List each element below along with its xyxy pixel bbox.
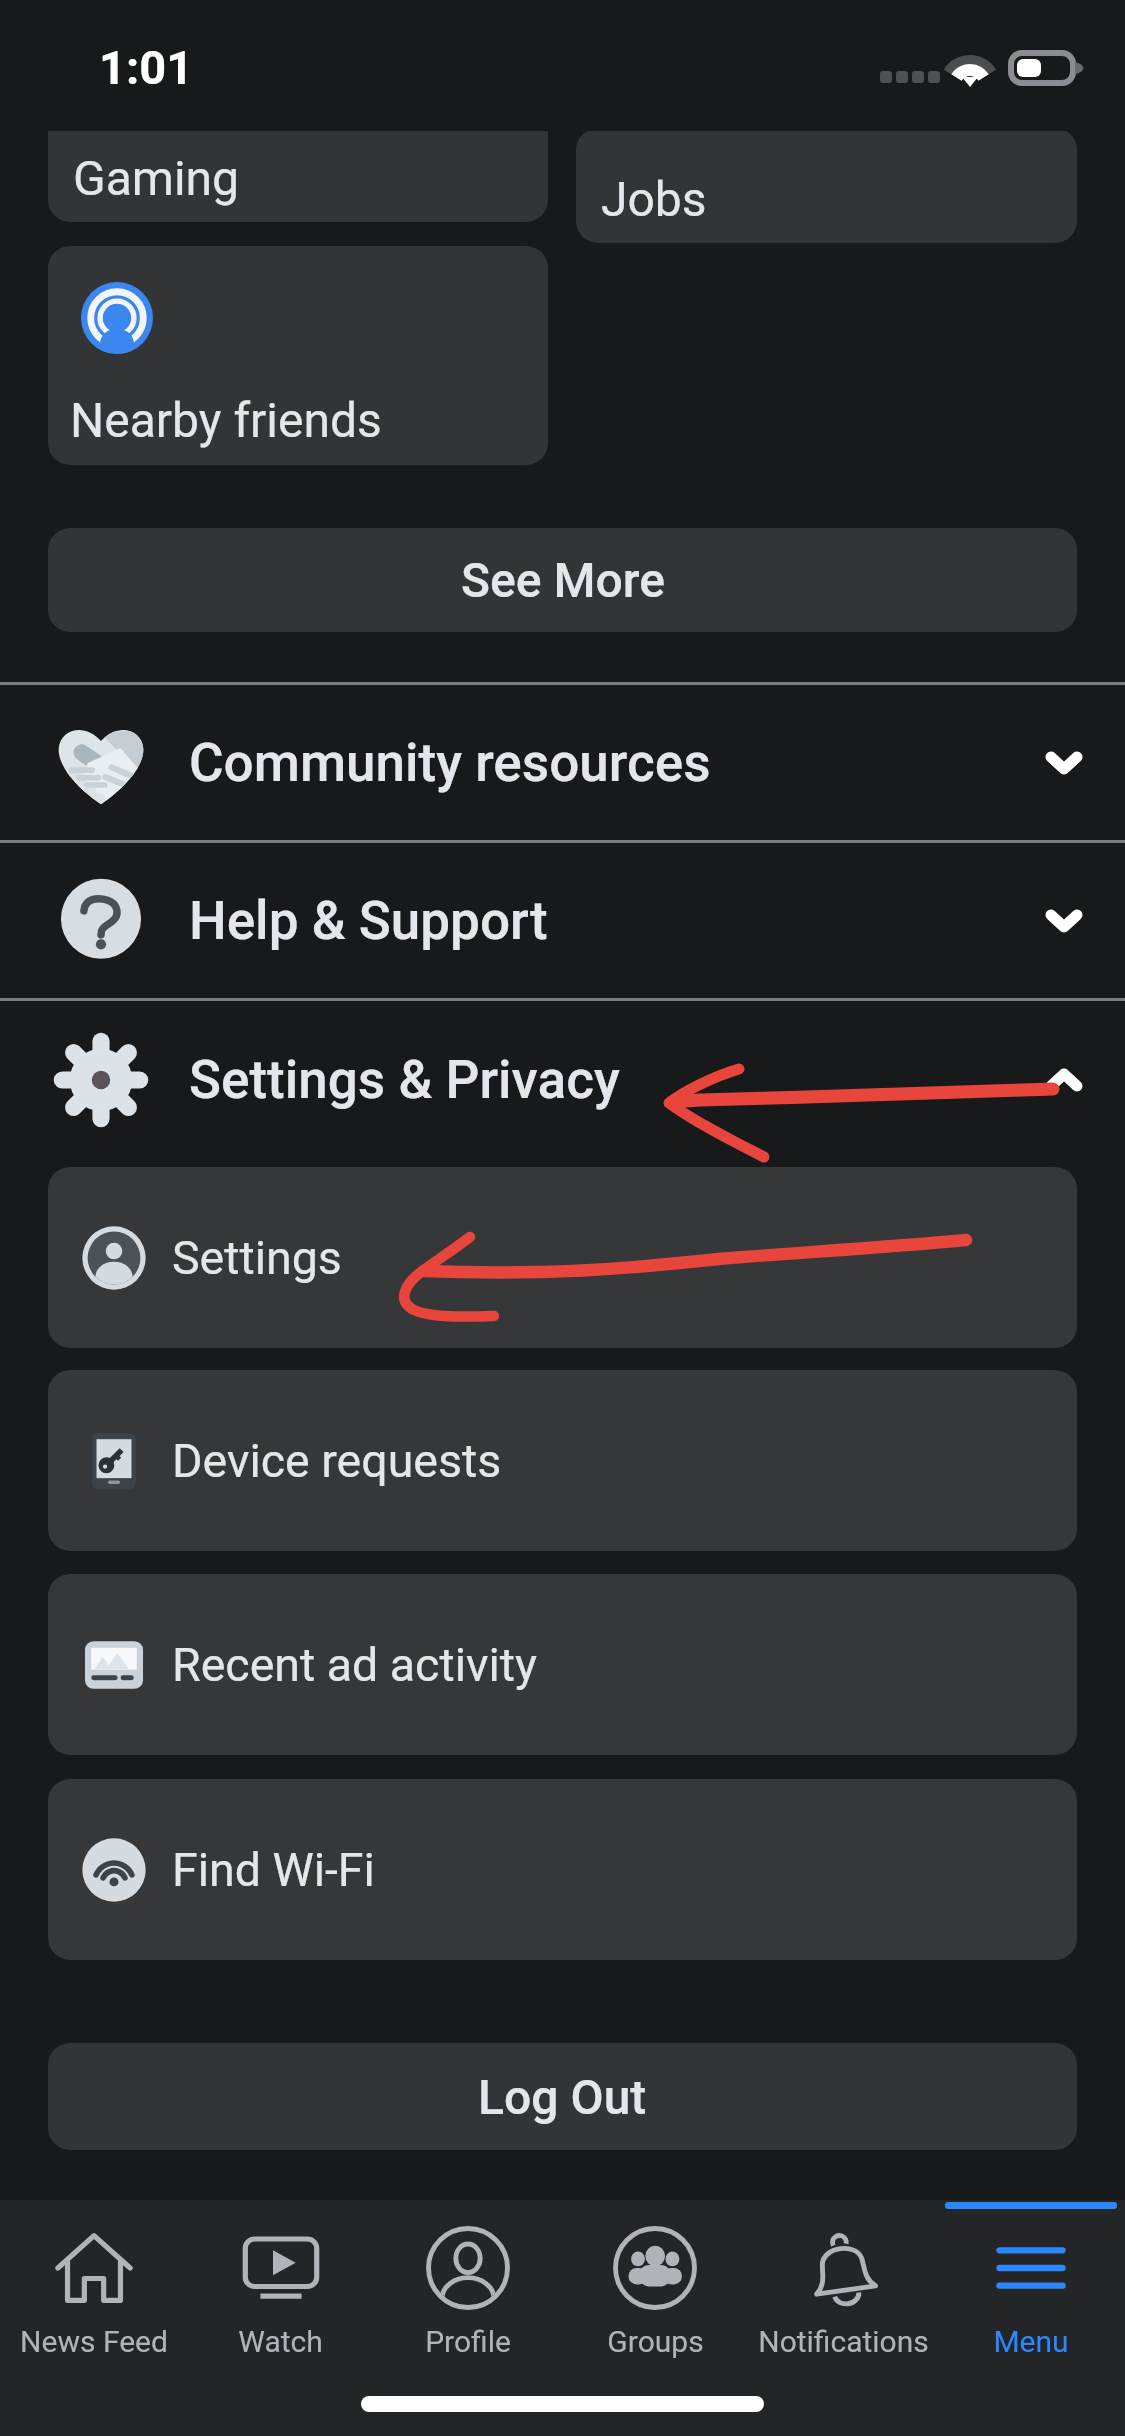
other: Expand Help and Support xyxy=(1046,910,1082,932)
button[interactable]: Menu xyxy=(937,2200,1125,2376)
button[interactable]: Notifications xyxy=(749,2200,937,2376)
button[interactable]: Watch xyxy=(187,2200,374,2376)
staticText: Help & Support xyxy=(189,890,548,952)
button[interactable]: Device requests xyxy=(48,1370,1077,1551)
button[interactable]: Settings xyxy=(48,1167,1077,1348)
staticText: News Feed xyxy=(20,2324,168,2359)
staticText: Groups xyxy=(607,2324,704,2359)
button[interactable]: Gaming xyxy=(48,62,548,222)
staticText: Notifications xyxy=(758,2324,929,2359)
staticText: Device requests xyxy=(172,1434,502,1488)
button[interactable]: Log Out xyxy=(48,2043,1077,2150)
button[interactable]: Jobs xyxy=(576,128,1077,243)
staticText: Jobs xyxy=(601,171,707,227)
staticText: Watch xyxy=(238,2324,323,2359)
button[interactable]: Profile xyxy=(374,2200,561,2376)
staticText: Recent ad activity xyxy=(172,1638,537,1692)
other: Expand Community resources xyxy=(1046,752,1082,774)
staticText: Nearby friends xyxy=(70,392,382,448)
staticText: Profile xyxy=(425,2324,511,2359)
button[interactable]: Groups xyxy=(561,2200,749,2376)
button[interactable]: Find Wi-Fi xyxy=(48,1779,1077,1960)
button[interactable]: Help & Support xyxy=(0,842,1125,1000)
staticText: Gaming xyxy=(73,150,240,206)
staticText: Settings xyxy=(172,1231,342,1285)
staticText: See More xyxy=(461,552,665,608)
other: Collapse Settings and Privacy xyxy=(1046,1069,1082,1091)
button[interactable]: News Feed xyxy=(0,2200,187,2376)
staticText: Find Wi-Fi xyxy=(172,1843,375,1897)
staticText: Settings & Privacy xyxy=(189,1049,620,1111)
button[interactable]: Settings & Privacy xyxy=(0,1000,1125,1160)
staticText: Log Out xyxy=(478,2069,647,2125)
staticText: 1:01 xyxy=(99,40,194,95)
staticText: Menu xyxy=(993,2324,1069,2359)
button[interactable]: Recent ad activity xyxy=(48,1574,1077,1755)
staticText: Community resources xyxy=(189,732,711,794)
button[interactable]: Nearby friends xyxy=(48,246,548,465)
button[interactable]: See More xyxy=(48,528,1077,632)
button[interactable]: Community resources xyxy=(0,684,1125,842)
